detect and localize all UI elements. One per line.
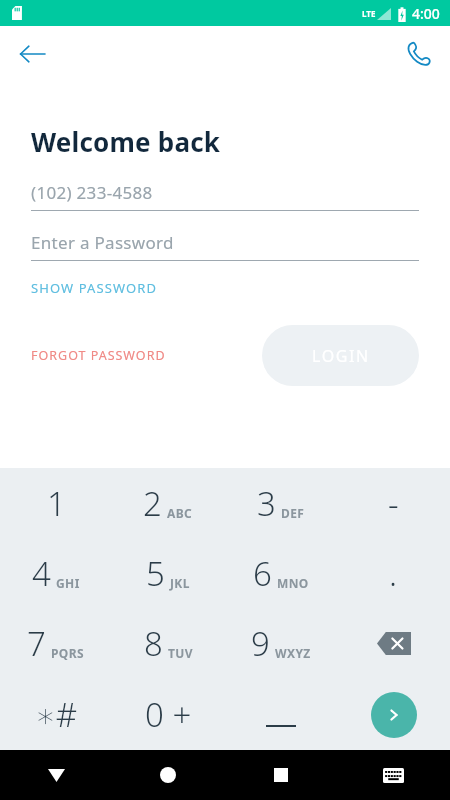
staticText: ABC	[167, 505, 193, 521]
button[interactable]: 3	[224, 468, 337, 538]
staticText: PQRS	[51, 645, 85, 661]
button[interactable]: .	[337, 538, 450, 608]
button[interactable]: 7	[0, 608, 112, 679]
staticText: 8	[144, 621, 163, 666]
button[interactable]: 0 +	[112, 679, 224, 750]
button[interactable]: SHOW PASSWORD	[31, 275, 158, 301]
staticText: Enter a Password	[31, 231, 174, 254]
staticText: MNO	[277, 575, 309, 591]
staticText: 4	[32, 551, 51, 596]
button[interactable]: 8	[112, 608, 224, 679]
button[interactable]: 2	[112, 468, 224, 538]
staticText: 4:00	[412, 4, 440, 23]
staticText: 6	[253, 551, 272, 596]
button[interactable]: -	[337, 468, 450, 538]
staticText: ∗#	[35, 692, 77, 737]
button[interactable]: LOGIN	[262, 325, 419, 386]
button[interactable]: 4	[0, 538, 112, 608]
staticText: 7	[27, 621, 46, 666]
button[interactable]: Call	[394, 30, 442, 78]
button[interactable]: 5	[112, 538, 224, 608]
button[interactable]: Hide keyboard	[0, 750, 112, 800]
staticText: (102) 233-4588	[31, 181, 153, 204]
staticText: DEF	[281, 505, 305, 521]
staticText: .	[389, 551, 398, 596]
button[interactable]: FORGOT PASSWORD	[31, 341, 166, 370]
staticText: -	[388, 481, 399, 526]
button[interactable]: 9	[224, 608, 337, 679]
staticText: 9	[251, 621, 270, 666]
button[interactable]: Back	[8, 30, 56, 78]
button[interactable]: Space	[224, 679, 337, 750]
button[interactable]: Submit	[337, 679, 450, 750]
button[interactable]: Switch keyboard	[337, 750, 450, 800]
button[interactable]: 1	[0, 468, 112, 538]
staticText: FORGOT PASSWORD	[31, 347, 166, 364]
button[interactable]: Home	[112, 750, 224, 800]
staticText: LOGIN	[312, 345, 370, 367]
staticText: JKL	[170, 575, 190, 591]
staticText: Welcome back	[31, 124, 221, 159]
staticText: 5	[146, 551, 165, 596]
staticText: LTE	[362, 8, 376, 19]
staticText: GHI	[56, 575, 80, 591]
button[interactable]: Backspace	[337, 608, 450, 679]
button[interactable]: Enter a Password	[31, 231, 419, 261]
staticText: 2	[143, 481, 162, 526]
staticText: 0 +	[145, 692, 192, 737]
staticText: SHOW PASSWORD	[31, 279, 158, 297]
button[interactable]: (102) 233-4588	[31, 181, 419, 211]
button[interactable]: 6	[224, 538, 337, 608]
staticText: 1	[47, 481, 66, 526]
button[interactable]: Recent apps	[224, 750, 337, 800]
button[interactable]: ∗#	[0, 679, 112, 750]
staticText: WXYZ	[275, 645, 311, 661]
staticText: TUV	[168, 645, 193, 661]
staticText: 3	[257, 481, 276, 526]
